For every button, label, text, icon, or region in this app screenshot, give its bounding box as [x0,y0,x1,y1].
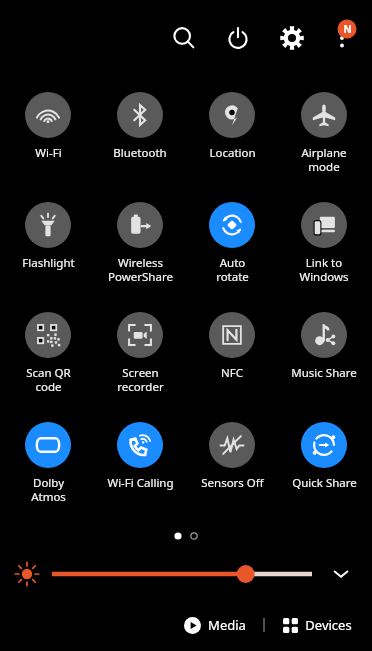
staticText: N [343,22,352,36]
staticText: Wi-Fi [35,145,62,161]
staticText: Sensors Off [201,475,264,491]
button[interactable]: Music Share [280,310,368,381]
staticText: Bluetooth [113,145,167,161]
staticText: Flashlight [22,255,75,271]
button[interactable]: Airplane mode [280,90,368,175]
button[interactable]: Flashlight [4,200,92,271]
staticText: Wireless PowerShare [108,255,173,285]
staticText: Scan QR code [26,365,71,395]
staticText: Music Share [291,365,357,381]
button[interactable]: Settings [272,18,312,58]
staticText: Auto rotate [216,255,249,285]
staticText: Airplane mode [301,145,347,175]
staticText: Link to Windows [299,255,349,285]
button[interactable]: Media [178,612,252,638]
staticText: Dolby Atmos [31,475,66,505]
button[interactable]: Wireless PowerShare [96,200,184,285]
staticText: Quick Share [292,475,357,491]
button[interactable]: NFC [188,310,276,381]
staticText: Wi-Fi Calling [107,475,174,491]
staticText: Devices [305,616,352,634]
staticText: Media [208,616,246,634]
button[interactable]: Wi-Fi [4,90,92,161]
button[interactable]: Devices [277,612,358,638]
button[interactable]: More options [322,18,362,58]
button[interactable]: Search [164,18,204,58]
staticText: NFC [221,365,243,381]
button[interactable]: Auto rotate [188,200,276,285]
staticText: Location [209,145,256,161]
staticText: Screen recorder [117,365,164,395]
button[interactable]: Scan QR code [4,310,92,395]
button[interactable]: Dolby Atmos [4,420,92,505]
button[interactable]: Location [188,90,276,161]
button[interactable]: Link to Windows [280,200,368,285]
button[interactable]: Wi-Fi Calling [96,420,184,491]
button[interactable]: Bluetooth [96,90,184,161]
button[interactable]: Sensors Off [188,420,276,491]
button[interactable]: Brightness [52,557,312,591]
button[interactable]: Power [218,18,258,58]
button[interactable]: Quick Share [280,420,368,491]
button[interactable]: Expand [324,557,358,591]
button[interactable]: Screen recorder [96,310,184,395]
